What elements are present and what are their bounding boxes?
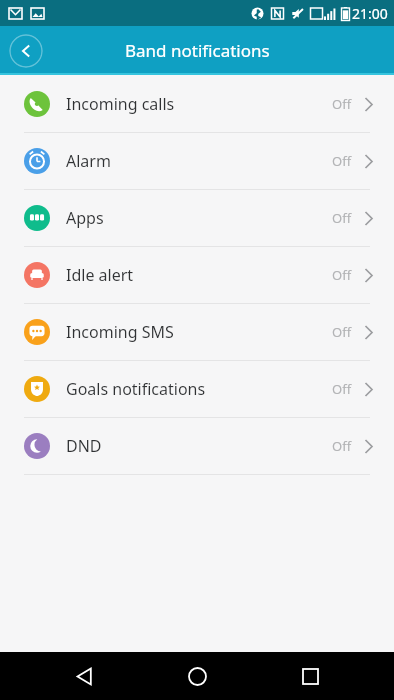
button[interactable]: Incoming calls xyxy=(0,76,394,132)
button[interactable]: DND xyxy=(0,418,394,474)
button[interactable]: Goals notifications xyxy=(0,361,394,417)
button[interactable]: Incoming SMS xyxy=(0,304,394,360)
staticText: Incoming calls xyxy=(66,93,175,115)
staticText: Off xyxy=(332,209,352,227)
staticText: Idle alert xyxy=(66,264,134,286)
staticText: 21:00 xyxy=(352,4,388,23)
staticText: Apps xyxy=(66,207,104,229)
button[interactable]: Home xyxy=(169,652,225,700)
button[interactable]: Alarm xyxy=(0,133,394,189)
staticText: Off xyxy=(332,437,352,455)
staticText: Off xyxy=(332,266,352,284)
staticText: Off xyxy=(332,152,352,170)
staticText: Alarm xyxy=(66,150,111,172)
button[interactable]: Recent apps xyxy=(282,652,338,700)
button[interactable]: Back xyxy=(9,34,43,68)
button[interactable]: Apps xyxy=(0,190,394,246)
staticText: Band notifications xyxy=(125,39,270,62)
button[interactable]: Back xyxy=(57,652,113,700)
staticText: Incoming SMS xyxy=(66,321,174,343)
staticText: DND xyxy=(66,435,102,457)
staticText: Off xyxy=(332,380,352,398)
staticText: Off xyxy=(332,323,352,341)
button[interactable]: Idle alert xyxy=(0,247,394,303)
staticText: Goals notifications xyxy=(66,378,206,400)
staticText: Off xyxy=(332,95,352,113)
